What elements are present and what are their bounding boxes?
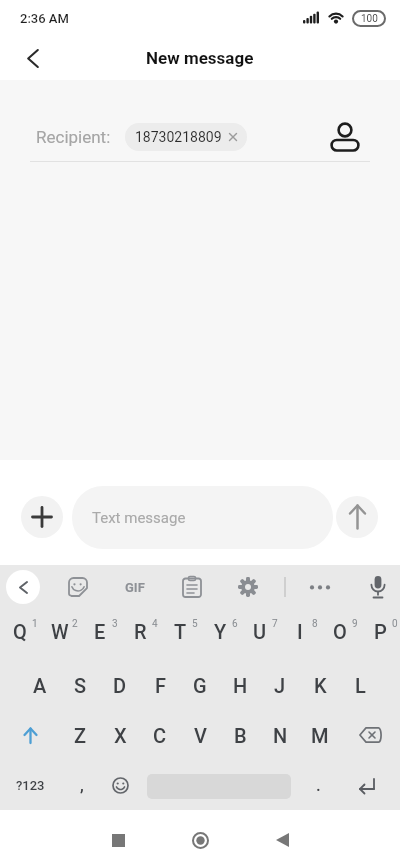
staticText: Q — [13, 620, 27, 643]
button[interactable] — [328, 120, 362, 154]
staticText: F — [155, 674, 166, 697]
button[interactable] — [336, 496, 378, 538]
button[interactable]: T — [160, 610, 200, 660]
button[interactable] — [98, 820, 138, 860]
staticText: P — [374, 620, 387, 643]
staticText: W — [51, 620, 69, 643]
staticText: 0 — [392, 618, 398, 630]
staticText: D — [113, 674, 127, 697]
staticText: O — [333, 620, 347, 643]
staticText: I — [297, 620, 303, 643]
staticText: 3 — [112, 618, 118, 630]
button[interactable]: . — [298, 760, 338, 810]
staticText: Text message — [92, 509, 186, 527]
button[interactable]: ?123 — [0, 760, 60, 810]
staticText: Y — [214, 620, 227, 643]
button[interactable]: S — [60, 660, 100, 710]
staticText: N — [273, 724, 288, 747]
staticText: T — [174, 620, 187, 643]
button[interactable]: Z — [60, 710, 100, 760]
button[interactable]: A — [20, 660, 60, 710]
button[interactable]: W — [40, 610, 80, 660]
staticText: K — [314, 674, 327, 697]
button[interactable]: C — [140, 710, 180, 760]
staticText: , — [80, 775, 84, 795]
button[interactable] — [0, 710, 60, 760]
button[interactable] — [370, 576, 386, 599]
button[interactable]: K — [300, 660, 340, 710]
staticText: L — [355, 674, 366, 697]
staticText: Recipient: — [36, 127, 111, 147]
staticText: R — [134, 620, 147, 643]
button[interactable] — [340, 710, 400, 760]
staticText: 5 — [192, 618, 198, 630]
button[interactable]: GIF — [115, 570, 155, 605]
staticText: 9 — [352, 618, 358, 630]
staticText: M — [311, 724, 329, 747]
button[interactable]: X — [100, 710, 140, 760]
button[interactable]: U — [240, 610, 280, 660]
staticText: A — [33, 674, 47, 697]
button[interactable] — [309, 585, 331, 590]
button[interactable]: O — [320, 610, 360, 660]
button[interactable]: I — [280, 610, 320, 660]
staticText: U — [253, 620, 267, 643]
staticText: New message — [146, 48, 254, 68]
button[interactable]: F — [140, 660, 180, 710]
staticText: X — [114, 724, 127, 747]
button[interactable] — [100, 760, 140, 810]
button[interactable]: Y — [200, 610, 240, 660]
button[interactable] — [182, 576, 202, 598]
button[interactable]: , — [62, 760, 102, 810]
button[interactable]: R — [120, 610, 160, 660]
button[interactable] — [67, 576, 89, 598]
staticText: C — [153, 724, 167, 747]
button[interactable]: 18730218809 — [135, 129, 237, 145]
staticText: 4 — [152, 618, 158, 630]
staticText: G — [193, 674, 207, 697]
staticText: V — [194, 724, 207, 747]
button[interactable]: N — [260, 710, 300, 760]
staticText: 8 — [312, 618, 318, 630]
staticText: 7 — [272, 618, 278, 630]
button[interactable]: G — [180, 660, 220, 710]
staticText: . — [316, 775, 321, 795]
staticText: B — [234, 724, 247, 747]
staticText: E — [94, 620, 106, 643]
button[interactable] — [21, 496, 63, 538]
staticText: 18730218809 — [135, 129, 222, 145]
button[interactable] — [342, 760, 392, 810]
button[interactable] — [262, 820, 302, 860]
button[interactable]: L — [340, 660, 380, 710]
staticText: J — [274, 674, 286, 697]
button[interactable]: E — [80, 610, 120, 660]
staticText: 100 — [361, 13, 378, 25]
staticText: 2 — [72, 618, 78, 630]
staticText: H — [233, 674, 248, 697]
button[interactable]: B — [220, 710, 260, 760]
button[interactable] — [6, 570, 40, 604]
button[interactable] — [237, 576, 259, 598]
staticText: GIF — [125, 580, 145, 595]
staticText: 2:36 AM — [20, 11, 69, 26]
staticText: 1 — [32, 618, 38, 630]
button[interactable]: J — [260, 660, 300, 710]
button[interactable] — [180, 820, 220, 860]
button[interactable]: M — [300, 710, 340, 760]
button[interactable]: V — [180, 710, 220, 760]
button[interactable]: P — [360, 610, 400, 660]
staticText: Z — [74, 724, 87, 747]
staticText: 6 — [232, 618, 238, 630]
staticText: S — [74, 674, 87, 697]
button[interactable]: D — [100, 660, 140, 710]
staticText: ?123 — [16, 778, 45, 793]
button[interactable]: H — [220, 660, 260, 710]
button[interactable]: Text message — [72, 486, 333, 549]
button[interactable] — [16, 41, 50, 75]
button[interactable]: Q — [0, 610, 40, 660]
